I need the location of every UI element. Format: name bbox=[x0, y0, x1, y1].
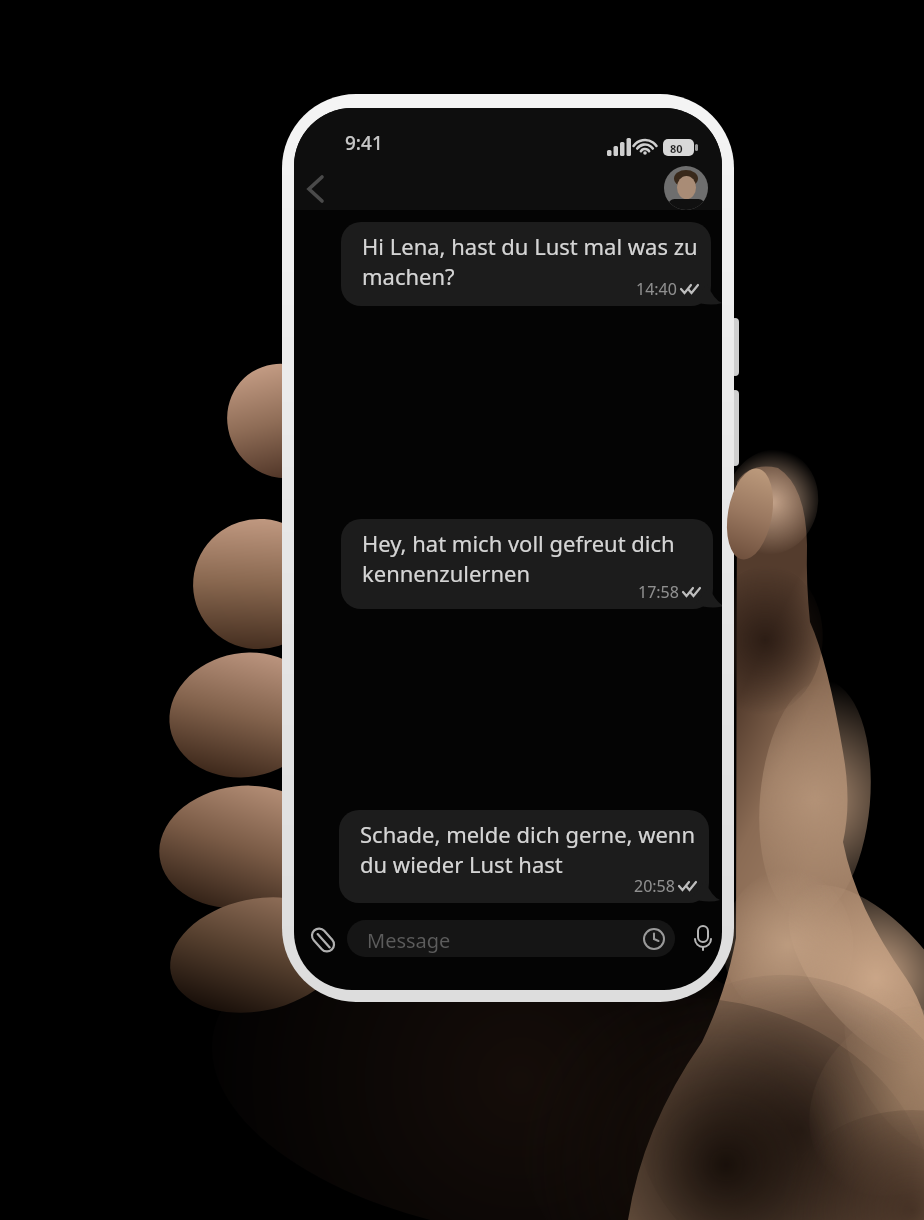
staticText: 20:58 bbox=[634, 875, 675, 897]
button[interactable] bbox=[309, 926, 339, 956]
staticText: Message bbox=[367, 927, 451, 954]
staticText: 17:58 bbox=[638, 581, 679, 603]
staticText: Schade, melde dich gerne, wenn bbox=[360, 819, 696, 849]
staticText: Hey, hat mich voll gefreut dich bbox=[362, 528, 675, 558]
button[interactable] bbox=[688, 923, 718, 953]
staticText: kennenzulernen bbox=[362, 558, 531, 588]
button[interactable] bbox=[664, 166, 708, 210]
button[interactable] bbox=[302, 168, 338, 204]
staticText: du wieder Lust hast bbox=[360, 849, 563, 879]
staticText: 14:40 bbox=[636, 278, 677, 300]
staticText: machen? bbox=[362, 261, 455, 291]
staticText: Hi Lena, hast du Lust mal was zu bbox=[362, 231, 698, 261]
button[interactable]: Message bbox=[347, 920, 675, 957]
staticText: 9:41 bbox=[345, 130, 383, 156]
staticText: 80 bbox=[670, 141, 683, 156]
